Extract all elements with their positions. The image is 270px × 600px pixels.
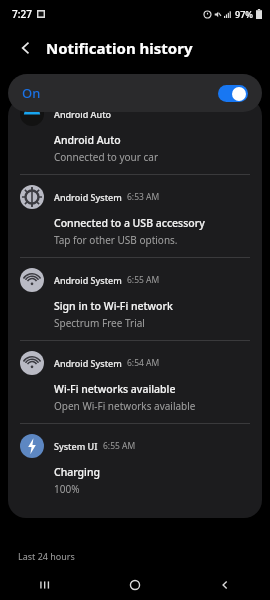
button[interactable]: Android System [8,175,262,258]
staticText: Open Wi-Fi networks available [54,399,196,413]
button[interactable]: On [8,74,262,112]
staticText: 6:55 AM [127,274,160,286]
staticText: Notification history [46,38,193,58]
staticText: Last 24 hours [18,550,75,562]
staticText: System UI [54,440,98,452]
button[interactable]: Recents [0,570,90,600]
staticText: Wi-Fi networks available [54,382,176,396]
button[interactable]: Home [90,570,180,600]
staticText: 6:55 AM [103,440,136,452]
staticText: Android Auto [54,108,112,120]
staticText: Spectrum Free Trial [54,316,145,330]
button[interactable]: Android System [8,258,262,341]
staticText: Sign in to Wi-Fi network [54,299,173,313]
staticText: Tap for other USB options. [54,233,178,247]
staticText: 100% [54,482,80,496]
staticText: Android System [54,357,122,369]
button[interactable]: Android Auto [8,98,262,175]
staticText: Android Auto [54,133,121,147]
staticText: Connected to your car [54,150,159,164]
staticText: Connected to a USB accessory [54,216,205,230]
staticText: 6:53 AM [127,191,160,203]
staticText: 97% [235,8,253,20]
staticText: 7:27 [12,7,32,21]
staticText: Android System [54,191,122,203]
staticText: Charging [54,465,101,479]
button[interactable]: Android System [8,341,262,424]
button[interactable]: Back [180,570,270,600]
button[interactable]: Back [12,34,40,62]
staticText: 6:54 AM [127,357,160,369]
button[interactable]: System UI [8,424,262,506]
staticText: Android System [54,274,122,286]
staticText: On [22,84,41,102]
